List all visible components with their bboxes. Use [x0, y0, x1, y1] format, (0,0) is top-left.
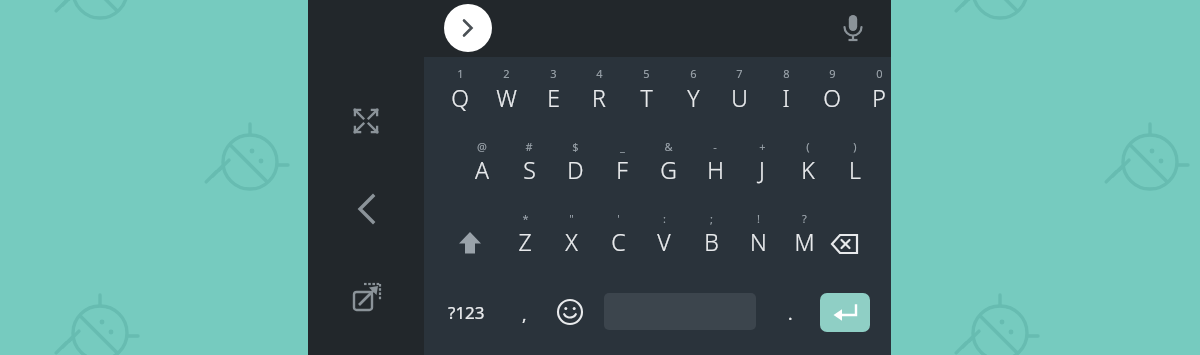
button[interactable]: O: [809, 75, 855, 119]
staticText: I: [782, 82, 790, 113]
staticText: 1: [457, 66, 464, 81]
button[interactable]: D: [552, 147, 598, 191]
button[interactable]: Backspace: [822, 221, 868, 267]
staticText: 3: [550, 66, 557, 81]
staticText: 9: [829, 66, 836, 81]
staticText: D: [567, 154, 584, 185]
staticText: M: [794, 226, 815, 257]
staticText: 6: [690, 66, 697, 81]
button[interactable]: .: [775, 298, 805, 328]
staticText: G: [660, 154, 677, 185]
button[interactable]: Q: [437, 75, 483, 119]
staticText: .: [788, 302, 793, 325]
staticText: _: [620, 139, 625, 154]
staticText: U: [731, 82, 748, 113]
button[interactable]: ,: [508, 298, 540, 330]
staticText: ': [617, 211, 620, 226]
staticText: X: [565, 226, 578, 257]
button[interactable]: Back: [342, 185, 390, 233]
staticText: -: [713, 139, 717, 154]
staticText: ): [853, 139, 857, 154]
button[interactable]: U: [716, 75, 762, 119]
button[interactable]: Enter: [820, 293, 870, 332]
button[interactable]: P: [856, 75, 902, 119]
button[interactable]: ?123: [437, 292, 495, 332]
button[interactable]: I: [763, 75, 809, 119]
staticText: O: [823, 82, 841, 113]
button[interactable]: A: [459, 147, 505, 191]
button[interactable]: X: [548, 219, 594, 263]
staticText: *: [522, 211, 529, 226]
staticText: ": [569, 211, 574, 226]
staticText: B: [704, 226, 719, 257]
staticText: L: [849, 154, 861, 185]
button[interactable]: G: [645, 147, 691, 191]
button[interactable]: N: [735, 219, 781, 263]
staticText: Y: [687, 82, 700, 113]
staticText: T: [640, 82, 653, 113]
staticText: J: [759, 154, 765, 185]
staticText: 4: [596, 66, 603, 81]
button[interactable]: S: [506, 147, 552, 191]
staticText: +: [759, 139, 766, 154]
staticText: N: [750, 226, 767, 257]
button[interactable]: Shift: [448, 221, 492, 265]
staticText: R: [592, 82, 606, 113]
button[interactable]: E: [530, 75, 576, 119]
staticText: V: [657, 226, 671, 257]
staticText: S: [523, 154, 536, 185]
button[interactable]: Next: [444, 4, 492, 52]
button[interactable]: W: [483, 75, 529, 119]
button[interactable]: L: [832, 147, 878, 191]
staticText: $: [572, 139, 579, 154]
staticText: F: [616, 154, 628, 185]
button[interactable]: B: [688, 219, 734, 263]
staticText: A: [475, 154, 489, 185]
button[interactable]: R: [576, 75, 622, 119]
staticText: 7: [736, 66, 743, 81]
staticText: H: [707, 154, 724, 185]
staticText: 5: [643, 66, 650, 81]
button[interactable]: Z: [502, 219, 548, 263]
staticText: W: [496, 82, 517, 113]
button[interactable]: Open in new window: [342, 274, 390, 322]
staticText: ;: [710, 211, 713, 226]
staticText: ,: [522, 303, 527, 326]
button[interactable]: Emoji: [552, 294, 588, 330]
staticText: ?123: [448, 301, 485, 324]
staticText: Z: [518, 226, 532, 257]
staticText: #: [525, 139, 533, 154]
staticText: E: [547, 82, 560, 113]
button[interactable]: Y: [670, 75, 716, 119]
button[interactable]: J: [739, 147, 785, 191]
staticText: (: [806, 139, 810, 154]
button[interactable]: C: [595, 219, 641, 263]
button[interactable]: M: [781, 219, 827, 263]
staticText: @: [477, 139, 487, 154]
button[interactable]: Fullscreen: [342, 97, 390, 145]
button[interactable]: V: [641, 219, 687, 263]
staticText: 2: [503, 66, 510, 81]
button[interactable]: F: [599, 147, 645, 191]
staticText: C: [611, 226, 626, 257]
staticText: 0: [876, 66, 883, 81]
button[interactable]: Voice input: [832, 6, 874, 48]
staticText: Q: [451, 82, 469, 113]
button[interactable]: H: [692, 147, 738, 191]
button[interactable]: T: [623, 75, 669, 119]
staticText: &: [664, 139, 673, 154]
staticText: K: [801, 154, 815, 185]
staticText: ?: [802, 211, 807, 226]
staticText: :: [663, 211, 666, 226]
staticText: 8: [783, 66, 790, 81]
staticText: !: [757, 211, 760, 226]
button[interactable]: K: [785, 147, 831, 191]
staticText: P: [872, 82, 886, 113]
